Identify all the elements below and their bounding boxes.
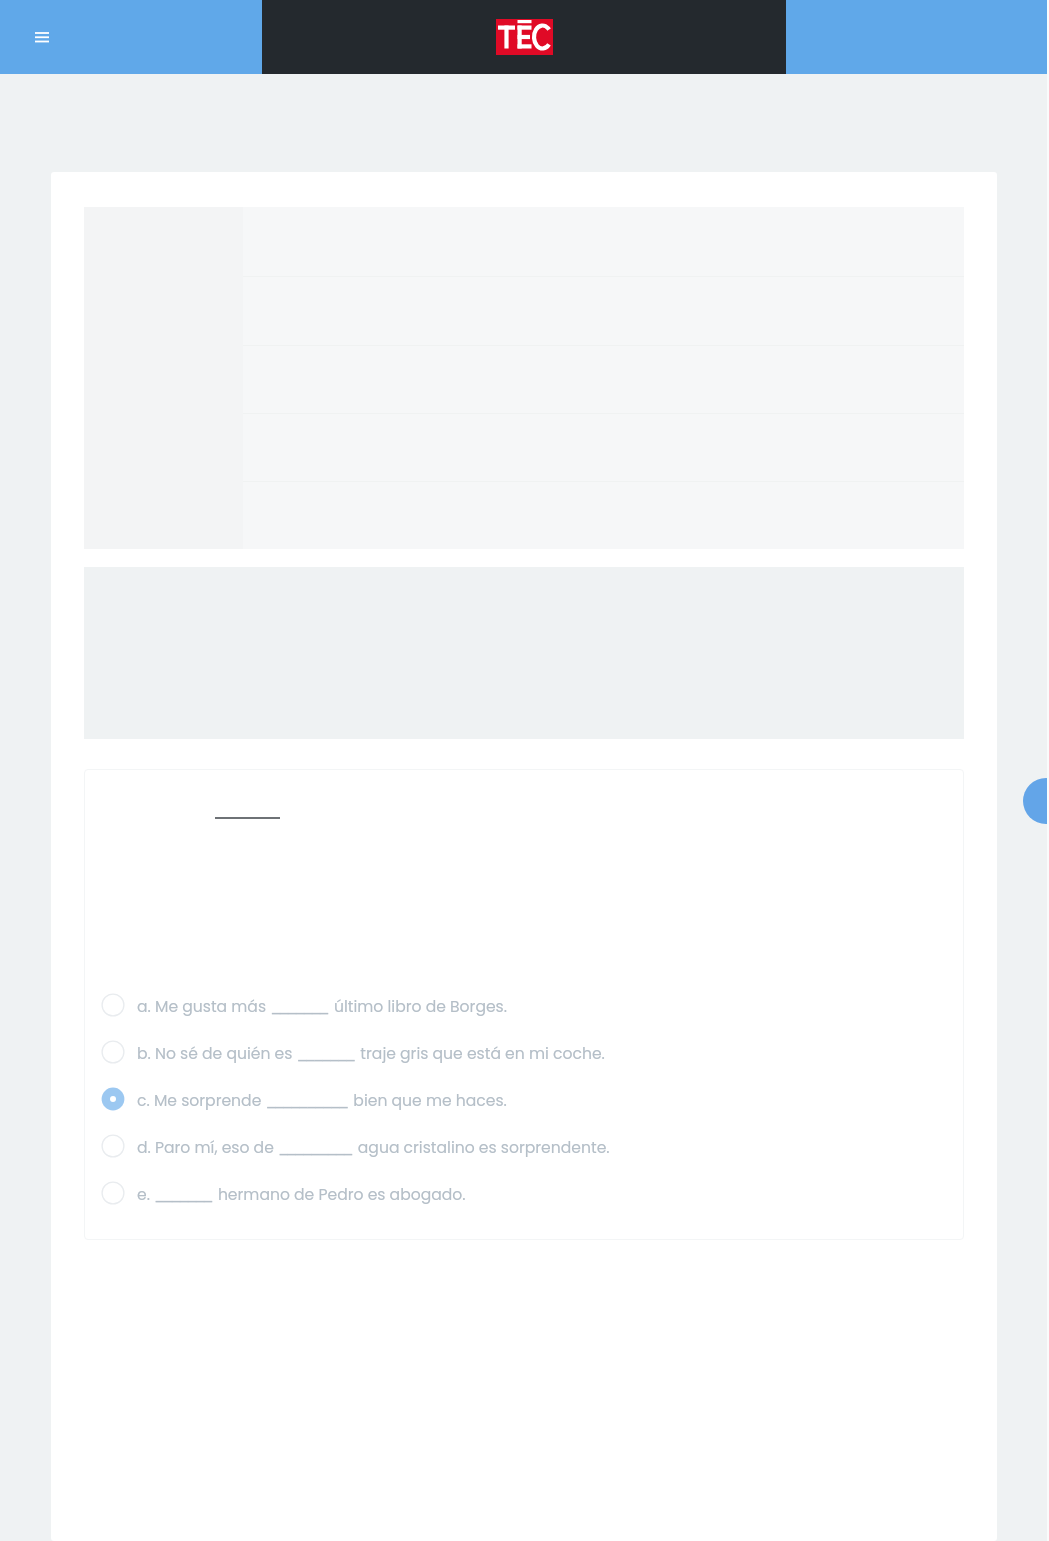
button[interactable]: TEC logo [496,19,553,55]
button[interactable]: a. Me gusta más _______ último libro de … [84,981,964,1028]
button[interactable]: e. _______ hermano de Pedro es abogado. [84,1169,964,1216]
button[interactable]: d. Paro mí, eso de _________ agua crista… [84,1122,964,1169]
staticText: a. Me gusta más _______ último libro de … [137,996,508,1018]
staticText: e. _______ hermano de Pedro es abogado. [137,1184,466,1206]
staticText: c. Me sorprende __________ bien que me h… [137,1090,507,1112]
button[interactable]: Open navigation menu [0,0,262,74]
button[interactable]: b. No sé de quién es _______ traje gris … [84,1028,964,1075]
button[interactable]: Help [1023,778,1049,824]
staticText: b. No sé de quién es _______ traje gris … [137,1043,605,1065]
staticText: d. Paro mí, eso de _________ agua crista… [137,1137,610,1159]
button[interactable]: c. Me sorprende __________ bien que me h… [84,1075,964,1122]
